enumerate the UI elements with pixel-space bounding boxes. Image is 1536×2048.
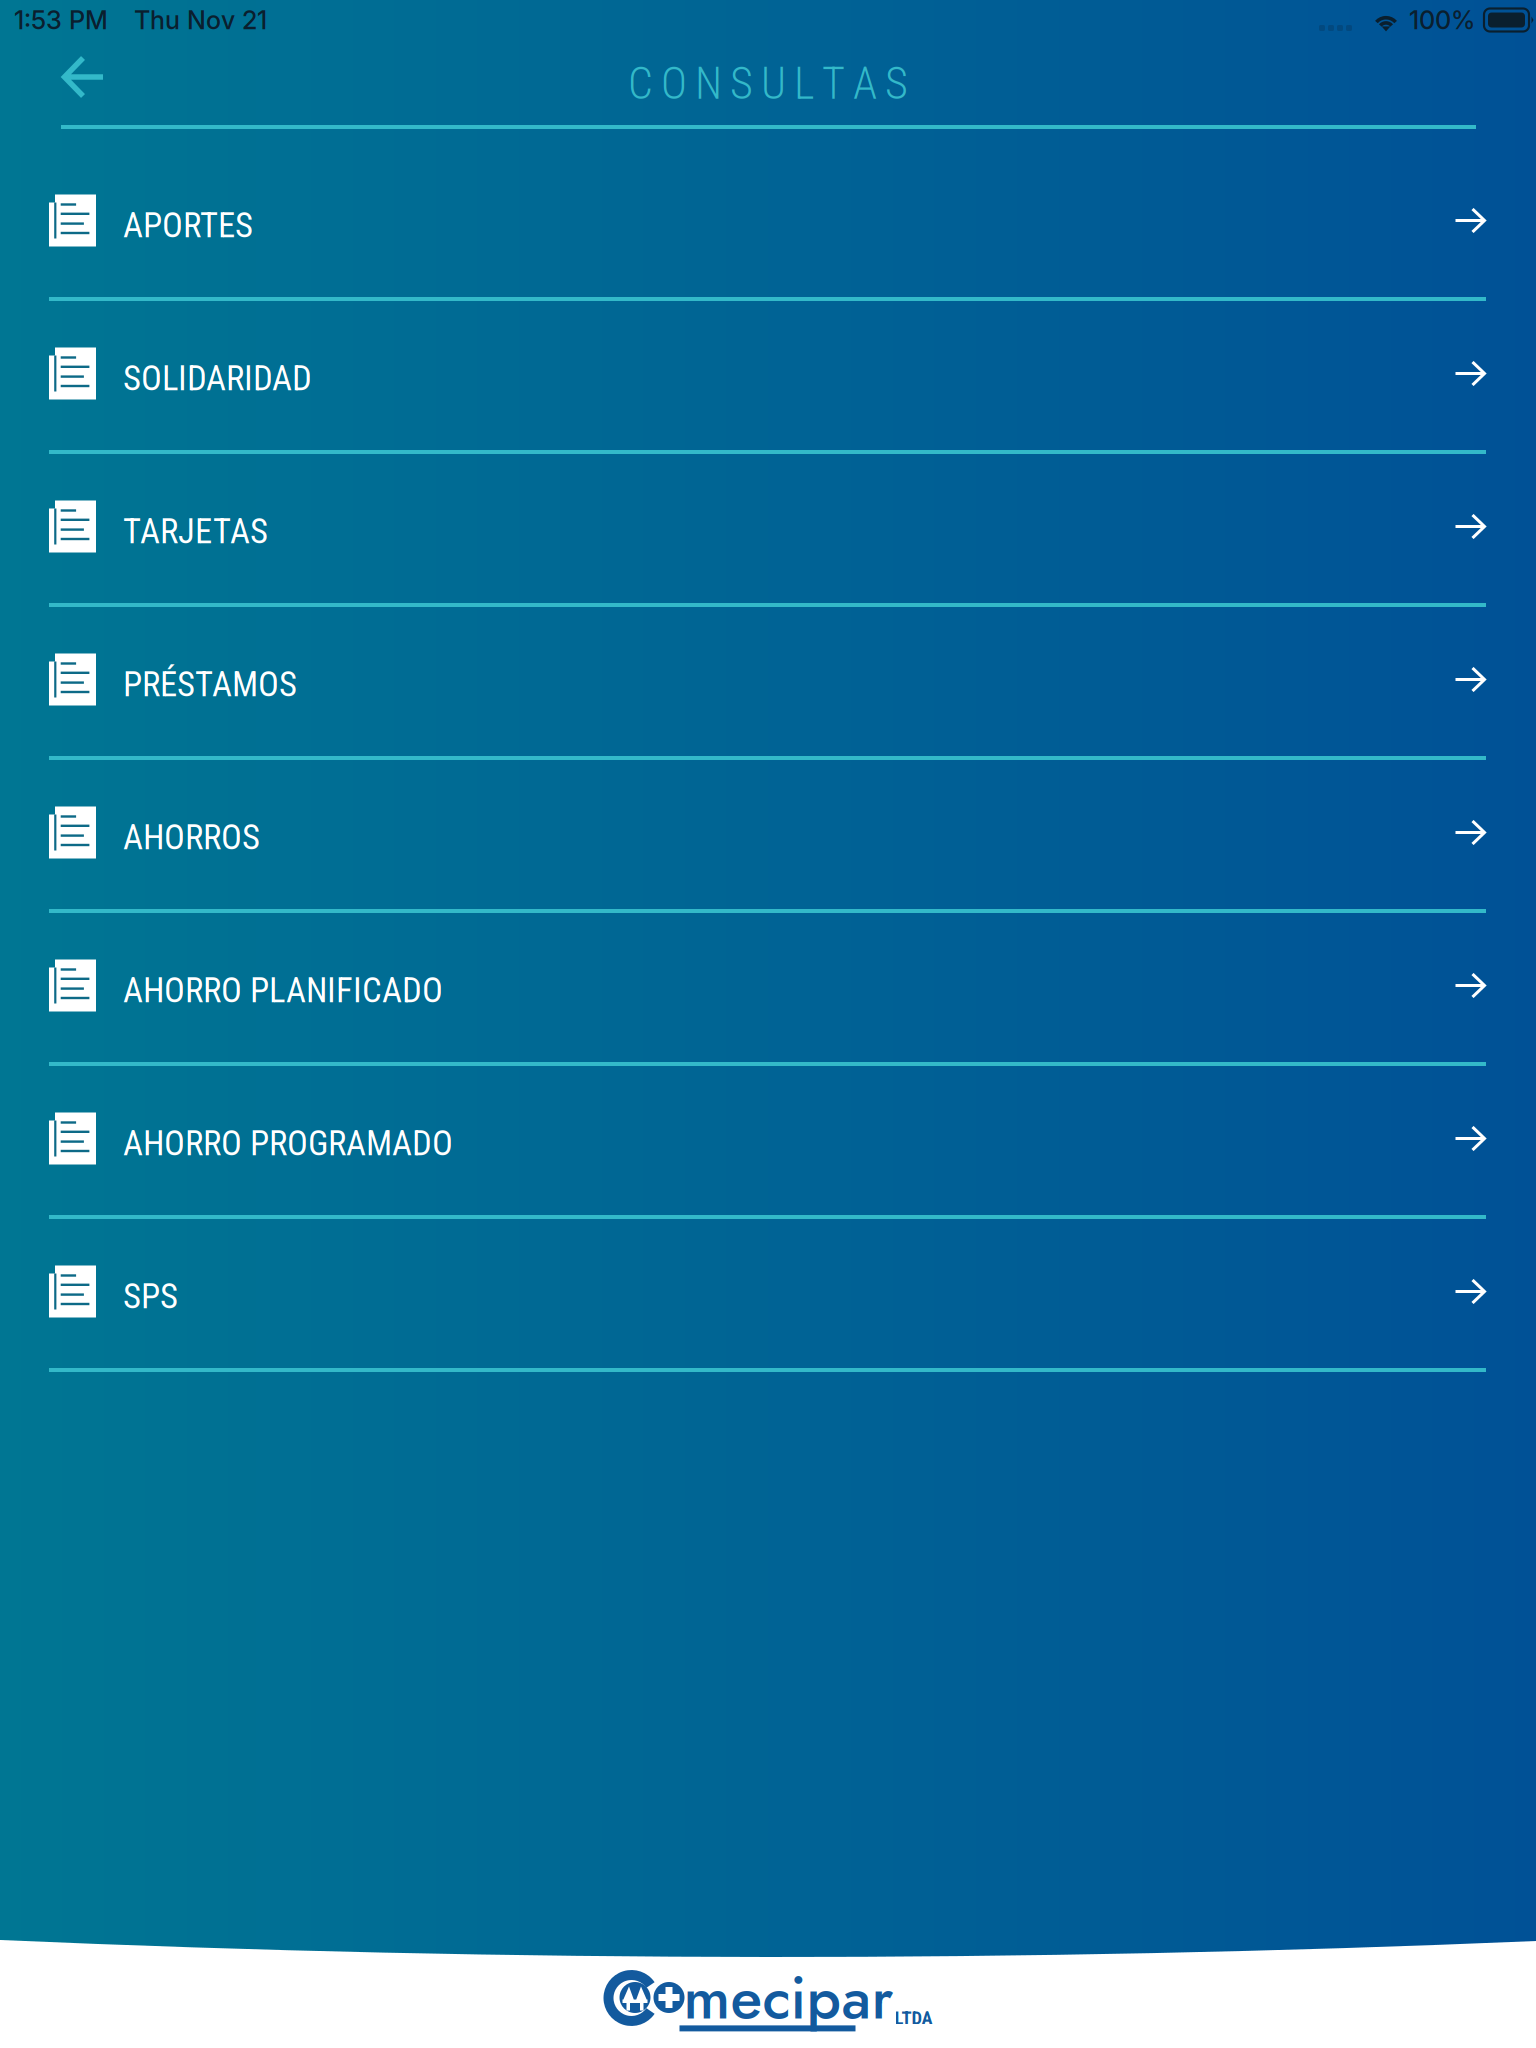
staticText: LTDA: [894, 2007, 932, 2029]
staticText: mecipar: [683, 1956, 893, 2040]
button[interactable]: AHORRO PLANIFICADO: [0, 913, 1536, 1066]
staticText: Thu Nov 21: [134, 5, 267, 35]
button[interactable]: TARJETAS: [0, 454, 1536, 607]
button[interactable]: AHORROS: [0, 760, 1536, 913]
staticText: 100%: [1409, 5, 1475, 35]
button[interactable]: SPS: [0, 1219, 1536, 1372]
button[interactable]: APORTES: [0, 148, 1536, 301]
staticText: 1:53 PM: [14, 5, 108, 35]
staticText: AHORRO PLANIFICADO: [123, 970, 443, 1011]
staticText: AHORROS: [123, 817, 260, 858]
button[interactable]: PRÉSTAMOS: [0, 607, 1536, 760]
button[interactable]: AHORRO PROGRAMADO: [0, 1066, 1536, 1219]
staticText: SPS: [123, 1276, 178, 1317]
staticText: C O N S U L T A S: [628, 58, 908, 110]
staticText: APORTES: [123, 205, 253, 246]
staticText: AHORRO PROGRAMADO: [123, 1123, 453, 1164]
button[interactable]: Back: [0, 40, 131, 125]
staticText: PRÉSTAMOS: [123, 664, 297, 705]
staticText: TARJETAS: [123, 511, 268, 552]
staticText: SOLIDARIDAD: [123, 358, 312, 399]
button[interactable]: SOLIDARIDAD: [0, 301, 1536, 454]
